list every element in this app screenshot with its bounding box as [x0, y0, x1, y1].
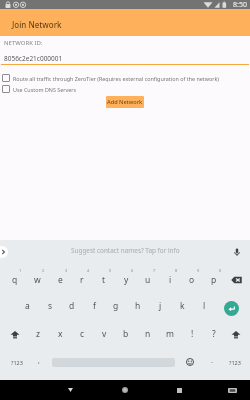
staticText: z — [36, 328, 40, 340]
staticText: 0 — [219, 268, 222, 273]
staticText: t — [102, 274, 106, 286]
button[interactable]: o — [181, 264, 203, 292]
button[interactable]: t — [93, 264, 115, 292]
button[interactable]: b — [115, 320, 137, 348]
button[interactable]: k — [171, 292, 193, 320]
staticText: r — [80, 274, 84, 286]
button[interactable]: h — [127, 292, 149, 320]
button[interactable]: ?123 — [3, 348, 30, 376]
button[interactable]: f — [83, 292, 105, 320]
button[interactable]: s — [39, 292, 61, 320]
button[interactable]: q — [3, 264, 26, 292]
staticText: . — [211, 356, 213, 366]
staticText: 9 — [197, 268, 200, 273]
button[interactable]: d — [61, 292, 83, 320]
staticText: ?123 — [229, 359, 241, 366]
staticText: o — [189, 274, 195, 286]
staticText: 3 — [65, 268, 68, 273]
button[interactable]: Shift — [225, 320, 247, 348]
staticText: 5 — [109, 268, 112, 273]
button[interactable]: n — [137, 320, 159, 348]
staticText: ? — [212, 328, 216, 340]
button[interactable]: ?123 — [221, 348, 248, 376]
button[interactable]: Expand suggestions — [0, 246, 8, 258]
button[interactable]: j — [149, 292, 171, 320]
button[interactable]: Emoji — [178, 348, 202, 376]
button[interactable]: Back — [61, 381, 79, 399]
staticText: Route all traffic through ZeroTier (Requ… — [13, 75, 219, 82]
staticText: i — [169, 274, 172, 286]
staticText: Suggest contact names? Tap for info — [71, 246, 180, 255]
staticText: 8 — [175, 268, 178, 273]
staticText: 4 — [87, 268, 90, 273]
button[interactable]: Voice input — [232, 247, 242, 257]
staticText: d — [69, 300, 75, 312]
staticText: ?123 — [11, 359, 23, 366]
button[interactable]: g — [105, 292, 127, 320]
staticText: 7 — [153, 268, 156, 273]
staticText: q — [12, 274, 18, 286]
button[interactable]: i — [159, 264, 181, 292]
button[interactable]: y — [115, 264, 137, 292]
button[interactable]: Shift — [3, 320, 26, 348]
staticText: m — [166, 328, 174, 340]
button[interactable]: Route all traffic through ZeroTier (Requ… — [2, 74, 247, 82]
button[interactable]: u — [137, 264, 159, 292]
button[interactable]: m — [159, 320, 181, 348]
button[interactable]: ? — [203, 320, 225, 348]
button[interactable]: c — [71, 320, 93, 348]
button[interactable]: p — [203, 264, 225, 292]
staticText: g — [113, 300, 119, 312]
staticText: ! — [191, 328, 194, 340]
staticText: j — [159, 300, 162, 312]
staticText: y — [124, 274, 129, 286]
button[interactable]: Switch keyboard — [223, 381, 241, 399]
staticText: c — [80, 328, 85, 340]
button[interactable]: ! — [181, 320, 203, 348]
button[interactable]: l — [193, 292, 215, 320]
button[interactable]: x — [49, 320, 71, 348]
staticText: v — [102, 328, 107, 340]
staticText: h — [135, 300, 141, 312]
staticText: u — [145, 274, 151, 286]
button[interactable]: Enter — [215, 292, 247, 320]
staticText: x — [58, 328, 63, 340]
staticText: , — [38, 356, 40, 366]
button[interactable]: e — [49, 264, 71, 292]
button[interactable]: Recent apps — [170, 381, 188, 399]
staticText: Add Network — [107, 98, 143, 106]
staticText: a — [25, 300, 30, 312]
staticText: 8:50 — [233, 0, 247, 9]
button[interactable]: , — [30, 348, 48, 376]
staticText: NETWORK ID: — [4, 39, 43, 47]
button[interactable]: v — [93, 320, 115, 348]
button[interactable]: a — [16, 292, 39, 320]
staticText: s — [48, 300, 53, 312]
staticText: 8056c2e21c000001 — [4, 54, 63, 63]
staticText: Use Custom DNS Servers — [13, 86, 77, 93]
button[interactable]: . — [203, 348, 221, 376]
button[interactable]: r — [71, 264, 93, 292]
button[interactable]: Backspace — [225, 264, 247, 292]
staticText: w — [34, 274, 41, 286]
staticText: n — [145, 328, 151, 340]
button[interactable]: w — [26, 264, 49, 292]
button[interactable]: Use Custom DNS Servers — [2, 85, 247, 93]
button[interactable]: Add Network — [106, 96, 144, 108]
staticText: l — [203, 300, 206, 312]
staticText: Join Network — [12, 19, 62, 30]
staticText: b — [123, 328, 129, 340]
staticText: f — [93, 300, 96, 312]
staticText: p — [211, 274, 217, 286]
staticText: e — [58, 274, 63, 286]
button[interactable]: z — [26, 320, 49, 348]
button[interactable]: Home — [116, 381, 134, 399]
staticText: 6 — [131, 268, 134, 273]
staticText: 2 — [42, 268, 45, 273]
staticText: 1 — [19, 268, 22, 273]
staticText: k — [180, 300, 185, 312]
